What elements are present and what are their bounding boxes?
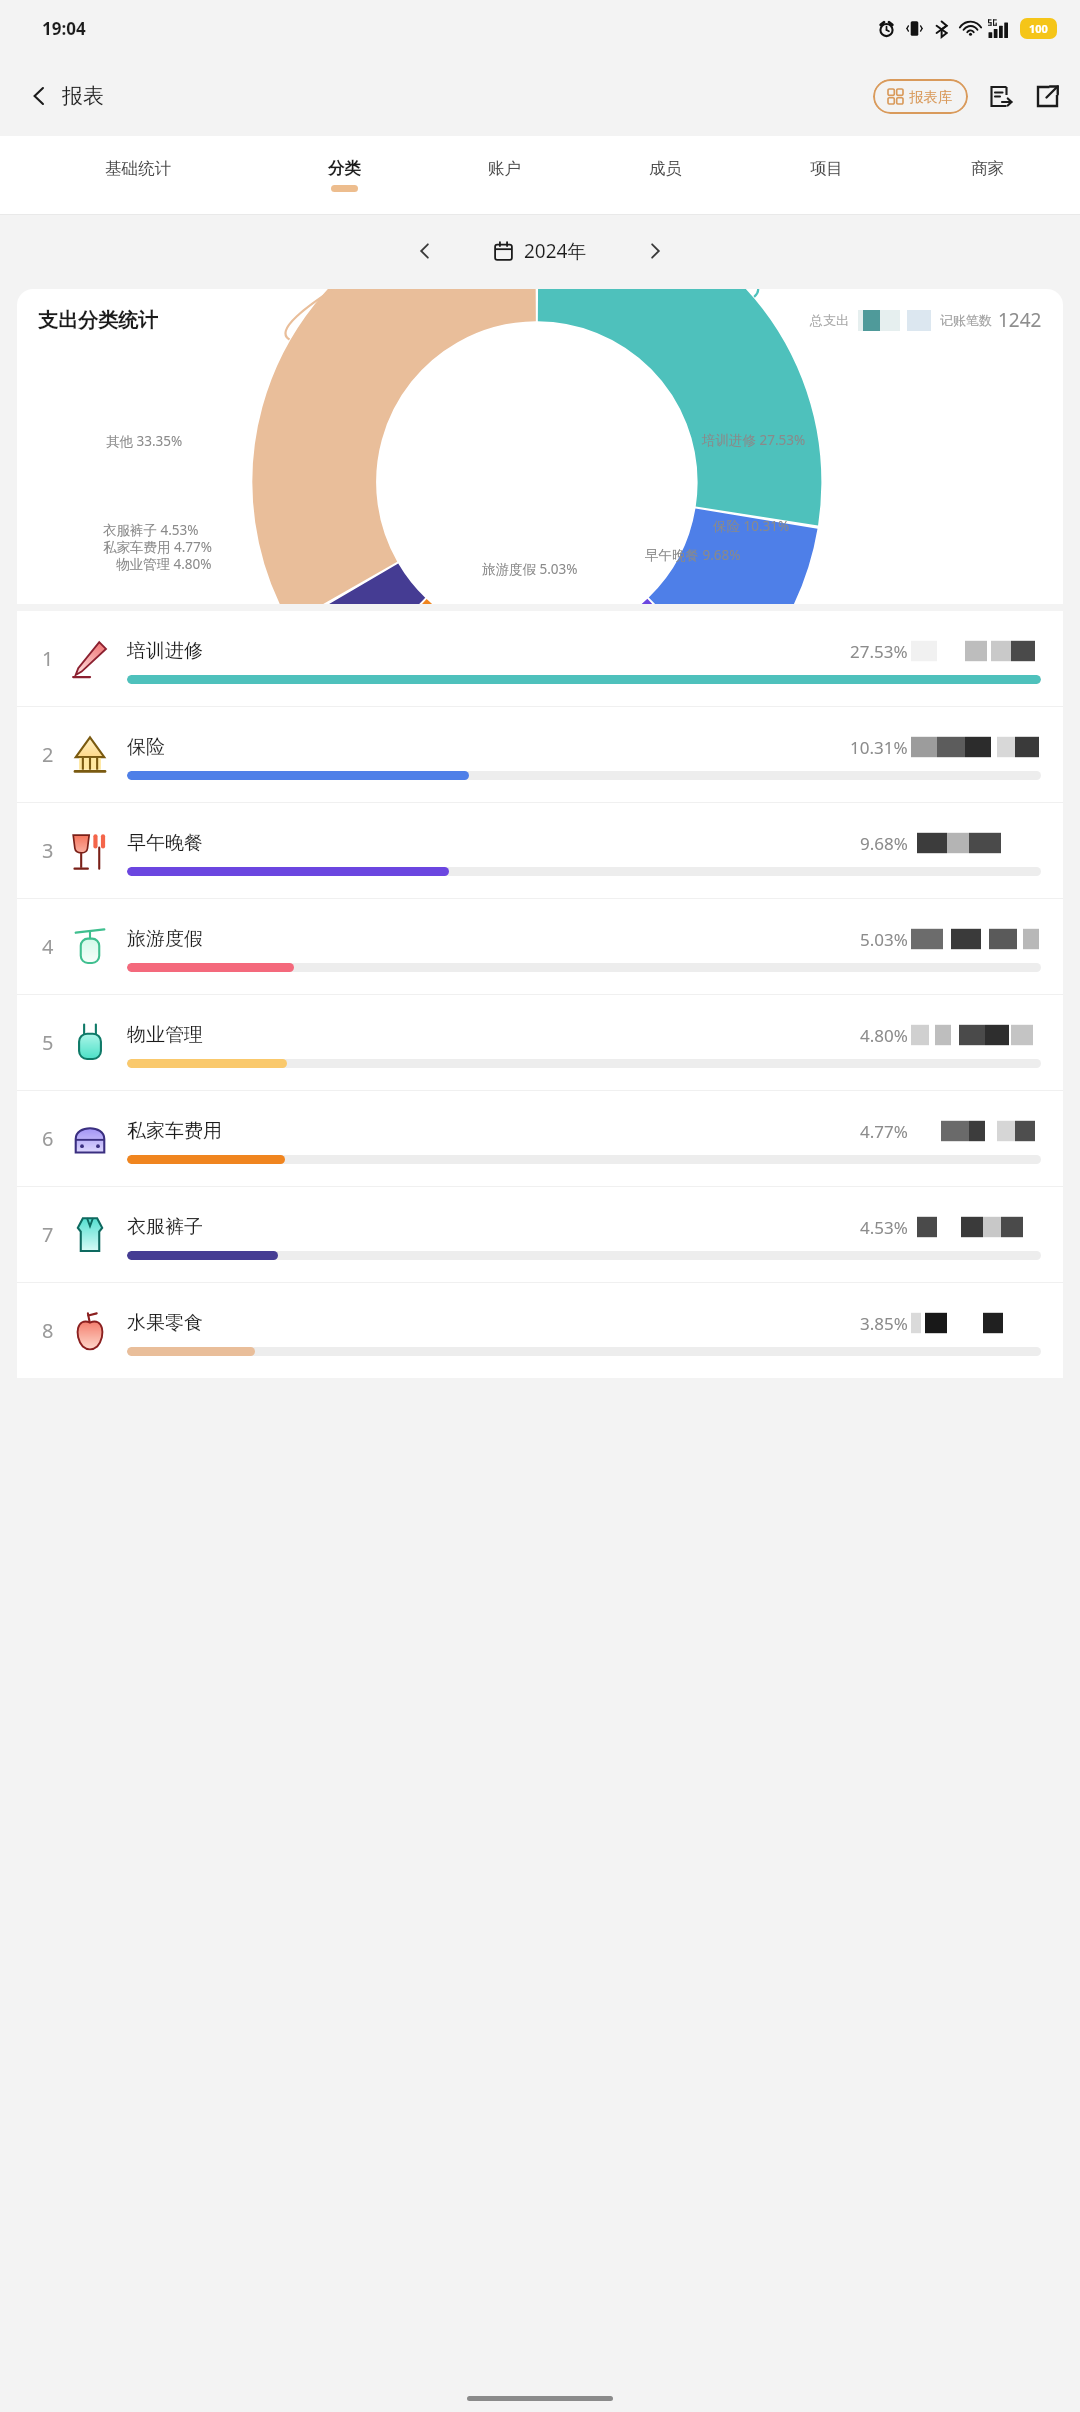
staticText: 旅游度假 5.03% (482, 560, 578, 578)
staticText: 4.53% (860, 1216, 908, 1239)
button[interactable]: Share (1035, 84, 1060, 109)
staticText: 4 (42, 933, 54, 960)
staticText: 6 (42, 1125, 54, 1152)
staticText: 商家 (971, 158, 1004, 179)
button[interactable]: 8 (17, 1283, 1063, 1378)
staticText: 项目 (810, 158, 843, 179)
staticText: 衣服裤子 (127, 1215, 203, 1239)
staticText: 4.77% (860, 1120, 908, 1143)
button[interactable]: 分类 (264, 136, 424, 214)
staticText: 8 (42, 1317, 54, 1344)
staticText: 7 (42, 1221, 54, 1248)
button[interactable]: 账户 (424, 136, 585, 214)
staticText: 19:04 (42, 17, 86, 40)
staticText: 1 (42, 645, 54, 672)
button[interactable]: 3 (17, 803, 1063, 898)
staticText: 报表库 (909, 88, 953, 106)
button[interactable]: 成员 (585, 136, 746, 214)
staticText: 成员 (649, 158, 682, 179)
staticText: 100 (1029, 21, 1048, 36)
staticText: 保险 (127, 735, 165, 759)
button[interactable]: 4 (17, 899, 1063, 994)
button[interactable]: 商家 (907, 136, 1068, 214)
staticText: 培训进修 (127, 639, 203, 663)
button[interactable]: Previous year (413, 239, 437, 263)
staticText: 3 (42, 837, 54, 864)
staticText: 物业管理 4.80% (116, 555, 212, 573)
staticText: 旅游度假 (127, 927, 203, 951)
button[interactable]: 项目 (746, 136, 907, 214)
staticText: 2 (42, 741, 54, 768)
button[interactable]: 1 (17, 611, 1063, 706)
staticText: 总支出 (810, 312, 849, 328)
button[interactable]: 报表库 (873, 79, 968, 114)
staticText: 5.03% (860, 928, 908, 951)
staticText: 账户 (488, 158, 521, 179)
staticText: 早午晚餐 9.68% (645, 546, 741, 564)
staticText: 3.85% (860, 1312, 908, 1335)
staticText: 27.53% (850, 640, 908, 663)
staticText: 9.68% (860, 832, 908, 855)
button[interactable]: 基础统计 (12, 136, 264, 214)
staticText: 其他 33.35% (106, 432, 183, 450)
button[interactable]: Back (24, 77, 108, 115)
staticText: 物业管理 (127, 1023, 203, 1047)
staticText: 保险 10.31% (713, 517, 790, 535)
staticText: 2024年 (524, 238, 587, 264)
button[interactable]: 2024年 (489, 234, 591, 268)
button[interactable]: 2 (17, 707, 1063, 802)
staticText: 报表 (62, 83, 104, 109)
staticText: 衣服裤子 4.53% (103, 521, 199, 539)
staticText: 支出分类统计 (38, 308, 158, 333)
button[interactable]: 5 (17, 995, 1063, 1090)
button[interactable]: 7 (17, 1187, 1063, 1282)
staticText: 4.80% (860, 1024, 908, 1047)
button[interactable]: Export (988, 84, 1013, 109)
staticText: 5 (42, 1029, 54, 1056)
staticText: 早午晚餐 (127, 831, 203, 855)
staticText: 水果零食 (127, 1311, 203, 1335)
staticText: 私家车费用 (127, 1119, 222, 1143)
other: Back (28, 85, 50, 107)
staticText: 私家车费用 4.77% (103, 538, 213, 556)
button[interactable]: Next year (643, 239, 667, 263)
button[interactable]: 6 (17, 1091, 1063, 1186)
staticText: 记账笔数 (940, 312, 992, 328)
staticText: 10.31% (850, 736, 908, 759)
staticText: 培训进修 27.53% (702, 431, 806, 449)
staticText: 分类 (328, 158, 361, 179)
staticText: 1242 (998, 307, 1042, 333)
staticText: 基础统计 (105, 158, 171, 179)
